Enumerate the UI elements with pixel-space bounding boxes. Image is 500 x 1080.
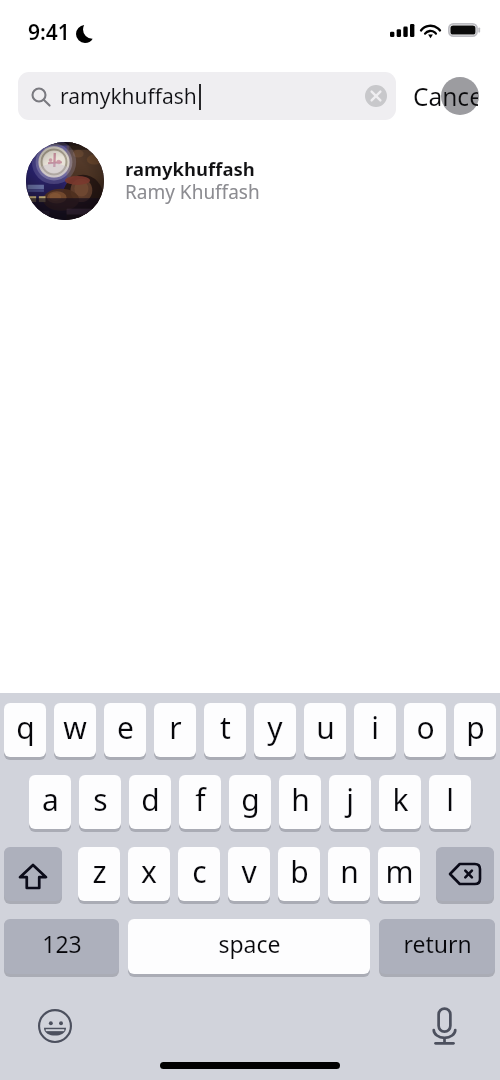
- staticText: d: [141, 779, 160, 820]
- staticText: 123: [42, 928, 82, 959]
- button[interactable]: b: [278, 847, 320, 901]
- staticText: y: [267, 707, 283, 748]
- button[interactable]: Clear text: [363, 83, 389, 109]
- staticText: c: [192, 851, 207, 892]
- button[interactable]: d: [129, 775, 171, 829]
- staticText: p: [466, 707, 485, 748]
- staticText: w: [63, 707, 87, 748]
- button[interactable]: f: [179, 775, 221, 829]
- button[interactable]: n: [328, 847, 370, 901]
- staticText: r: [169, 707, 182, 748]
- button[interactable]: v: [228, 847, 270, 901]
- button[interactable]: space: [128, 919, 370, 974]
- button[interactable]: g: [229, 775, 271, 829]
- staticText: k: [392, 779, 409, 820]
- staticText: Ramy Khuffash: [125, 179, 260, 205]
- staticText: i: [371, 707, 379, 748]
- button[interactable]: Cancel: [413, 72, 478, 120]
- staticText: v: [241, 851, 257, 892]
- button[interactable]: t: [204, 703, 246, 757]
- button[interactable]: c: [178, 847, 220, 901]
- button[interactable]: h: [279, 775, 321, 829]
- button[interactable]: e: [104, 703, 146, 757]
- button[interactable]: return: [379, 919, 495, 974]
- button[interactable]: ramykhuffash: [18, 72, 396, 120]
- button[interactable]: y: [254, 703, 296, 757]
- button[interactable]: l: [429, 775, 471, 829]
- staticText: m: [385, 851, 414, 892]
- button[interactable]: a: [29, 775, 71, 829]
- button[interactable]: q: [4, 703, 46, 757]
- button[interactable]: x: [128, 847, 170, 901]
- staticText: t: [220, 707, 231, 748]
- button[interactable]: w: [54, 703, 96, 757]
- staticText: e: [117, 707, 134, 748]
- staticText: x: [141, 851, 157, 892]
- button[interactable]: Dictation: [424, 1006, 464, 1046]
- staticText: q: [16, 707, 35, 748]
- staticText: space: [218, 928, 281, 959]
- staticText: l: [446, 779, 454, 820]
- staticText: g: [241, 779, 260, 820]
- button[interactable]: z: [78, 847, 120, 901]
- button[interactable]: r: [154, 703, 196, 757]
- button[interactable]: k: [379, 775, 421, 829]
- button[interactable]: j: [329, 775, 371, 829]
- button[interactable]: Backspace: [436, 847, 494, 901]
- staticText: s: [93, 779, 108, 820]
- button[interactable]: 123: [4, 919, 119, 974]
- staticText: b: [290, 851, 309, 892]
- button[interactable]: s: [79, 775, 121, 829]
- staticText: n: [340, 851, 359, 892]
- button[interactable]: p: [454, 703, 496, 757]
- button[interactable]: i: [354, 703, 396, 757]
- staticText: 9:41: [28, 18, 70, 47]
- button[interactable]: m: [378, 847, 420, 901]
- staticText: Cancel: [413, 80, 478, 113]
- button[interactable]: Emoji keyboard: [31, 1002, 79, 1050]
- button[interactable]: ramykhuffash: [0, 132, 500, 230]
- staticText: o: [416, 707, 435, 748]
- button[interactable]: u: [304, 703, 346, 757]
- staticText: return: [403, 928, 472, 959]
- button[interactable]: Shift: [4, 847, 62, 901]
- staticText: z: [92, 851, 107, 892]
- button[interactable]: o: [404, 703, 446, 757]
- staticText: h: [291, 779, 310, 820]
- staticText: ramykhuffash: [60, 82, 197, 111]
- staticText: a: [42, 779, 59, 820]
- staticText: u: [316, 707, 335, 748]
- staticText: j: [346, 779, 354, 820]
- staticText: ramykhuffash: [125, 156, 255, 181]
- staticText: f: [195, 779, 206, 820]
